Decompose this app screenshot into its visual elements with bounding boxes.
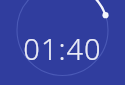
staticText: 01:40: [23, 29, 102, 68]
button[interactable]: Countdown timer 01:40: [0, 0, 125, 85]
